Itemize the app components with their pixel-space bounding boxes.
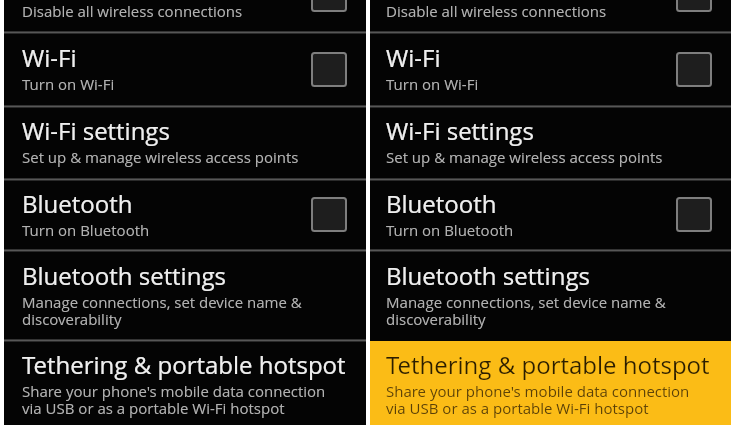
button[interactable]: Toggle Airplane mode xyxy=(311,0,347,12)
staticText: Tethering & portable hotspot xyxy=(386,348,710,381)
button[interactable]: Wi-Fi xyxy=(4,33,366,106)
button[interactable]: Disable all wireless connections xyxy=(370,0,731,33)
staticText: Wi-Fi xyxy=(22,41,77,74)
staticText: Disable all wireless connections xyxy=(22,1,243,21)
staticText: Manage connections, set device name & di… xyxy=(386,292,666,330)
staticText: Wi-Fi settings xyxy=(386,114,534,147)
button[interactable]: Toggle Airplane mode xyxy=(676,0,712,12)
staticText: Wi-Fi xyxy=(386,41,441,74)
button[interactable]: Disable all wireless connections xyxy=(4,0,366,33)
button[interactable]: Tethering & portable hotspot xyxy=(370,341,731,425)
button[interactable]: Bluetooth xyxy=(4,179,366,250)
staticText: Turn on Bluetooth xyxy=(386,220,514,240)
button[interactable]: Toggle Wi-Fi xyxy=(676,52,712,87)
staticText: Set up & manage wireless access points xyxy=(22,147,299,167)
staticText: Bluetooth settings xyxy=(22,259,226,292)
button[interactable]: Bluetooth xyxy=(370,179,731,250)
staticText: Bluetooth xyxy=(22,187,133,220)
button[interactable]: Wi-Fi xyxy=(370,33,731,106)
staticText: Share your phone's mobile data connectio… xyxy=(386,381,690,419)
button[interactable]: Wi-Fi settings xyxy=(370,106,731,179)
button[interactable]: Wi-Fi settings xyxy=(4,106,366,179)
staticText: Disable all wireless connections xyxy=(386,1,607,21)
staticText: Bluetooth settings xyxy=(386,259,590,292)
button[interactable]: Bluetooth settings xyxy=(4,251,366,341)
staticText: Manage connections, set device name & di… xyxy=(22,292,302,330)
staticText: Turn on Bluetooth xyxy=(22,220,150,240)
button[interactable]: Bluetooth settings xyxy=(370,251,731,341)
staticText: Set up & manage wireless access points xyxy=(386,147,663,167)
button[interactable]: Tethering & portable hotspot xyxy=(4,341,366,425)
button[interactable]: Toggle Wi-Fi xyxy=(311,52,347,87)
staticText: Turn on Wi-Fi xyxy=(22,74,115,94)
staticText: Bluetooth xyxy=(386,187,497,220)
staticText: Wi-Fi settings xyxy=(22,114,170,147)
button[interactable]: Toggle Bluetooth xyxy=(676,197,712,232)
staticText: Turn on Wi-Fi xyxy=(386,74,479,94)
button[interactable]: Toggle Bluetooth xyxy=(311,197,347,232)
staticText: Share your phone's mobile data connectio… xyxy=(22,381,326,419)
staticText: Tethering & portable hotspot xyxy=(22,348,346,381)
